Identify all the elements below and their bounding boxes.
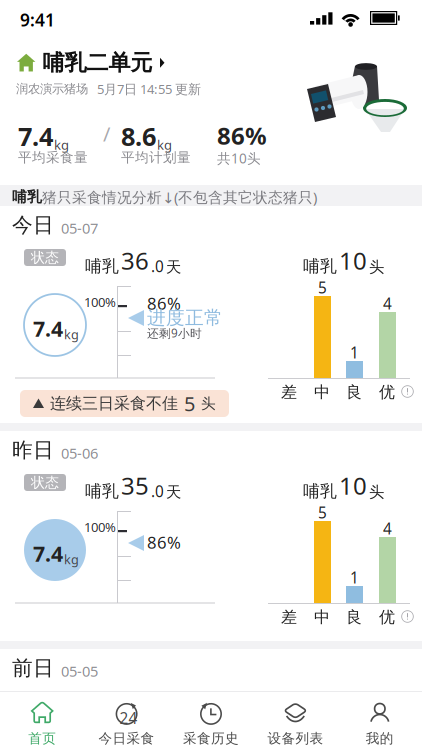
staticText: 状态 (31, 474, 59, 491)
staticText: 前日 (12, 655, 54, 681)
staticText: 头 (201, 394, 216, 413)
staticText: .0 (151, 481, 164, 502)
staticText: 头 (369, 482, 384, 502)
staticText: 8.6 (121, 119, 156, 153)
staticText: 平均采食量 (18, 149, 88, 166)
staticText: kg (157, 136, 172, 153)
staticText: kg (64, 551, 79, 568)
staticText: kg (64, 326, 79, 343)
staticText: 05-07 (61, 218, 98, 238)
button[interactable]: 24 (84, 699, 169, 749)
staticText: 设备列表 (267, 730, 323, 747)
staticText: 采食历史 (183, 730, 239, 747)
staticText: 10 (339, 244, 367, 277)
staticText: 今日 (12, 212, 54, 238)
staticText: 5 (184, 390, 195, 417)
staticText: 良 (346, 382, 362, 402)
staticText: 35 (121, 469, 149, 502)
staticText: 24 (119, 707, 137, 728)
staticText: 哺乳 (12, 188, 42, 206)
staticText: 哺乳 (85, 481, 119, 502)
staticText: 86% (147, 292, 181, 315)
button[interactable]: 我的 (338, 699, 422, 749)
staticText: 05-05 (61, 661, 98, 681)
staticText: 86% (147, 531, 181, 554)
button[interactable]: 说明 (401, 385, 414, 398)
staticText: 7.4 (33, 539, 63, 568)
staticText: / (103, 120, 110, 147)
staticText: 4 (383, 293, 392, 314)
staticText: 哺乳二单元 (42, 49, 152, 76)
staticText: 进度正常 (147, 306, 223, 329)
staticText: 100% (84, 518, 116, 536)
button[interactable]: 设备列表 (253, 699, 338, 749)
button[interactable]: 首页 (0, 699, 84, 749)
staticText: 5 (318, 277, 327, 298)
staticText: 头 (369, 257, 384, 277)
staticText: 100% (84, 293, 116, 311)
staticText: 平均计划量 (121, 149, 191, 166)
staticText: 猪只采食情况分析↓(不包含其它状态猪只) (42, 187, 317, 207)
staticText: 润农演示猪场 (16, 81, 88, 97)
staticText: 9:41 (20, 8, 55, 32)
staticText: 状态 (31, 249, 59, 266)
staticText: 首页 (28, 730, 56, 747)
staticText: 天 (166, 257, 181, 277)
staticText: 优 (379, 382, 395, 402)
staticText: 4 (383, 518, 392, 539)
staticText: 优 (379, 607, 395, 627)
staticText: 中 (314, 382, 330, 402)
staticText: 还剩9小时 (147, 325, 202, 341)
staticText: 今日采食 (99, 730, 155, 747)
staticText: 哺乳 (85, 256, 119, 277)
staticText: 中 (314, 607, 330, 627)
staticText: 连续三日采食不佳 (50, 393, 178, 414)
staticText: 86% (217, 119, 267, 152)
staticText: 5月7日 14:55 更新 (97, 80, 201, 98)
staticText: 1 (350, 567, 359, 588)
button[interactable]: 说明 (401, 610, 414, 623)
button[interactable]: 采食历史 (169, 699, 253, 749)
staticText: 05-06 (61, 443, 98, 463)
staticText: 36 (121, 244, 149, 277)
staticText: 7.4 (18, 119, 53, 153)
staticText: 差 (281, 607, 297, 627)
staticText: 7.4 (33, 314, 63, 343)
staticText: 共10头 (217, 149, 261, 167)
staticText: 良 (346, 607, 362, 627)
button[interactable]: 哺乳二单元 (17, 49, 165, 76)
staticText: 天 (166, 482, 181, 502)
staticText: 5 (318, 502, 327, 523)
staticText: 10 (339, 469, 367, 502)
staticText: 昨日 (12, 437, 54, 463)
staticText: 1 (350, 342, 359, 363)
button[interactable]: 连续三日采食不佳 (20, 390, 229, 417)
staticText: 我的 (366, 730, 394, 747)
staticText: 哺乳 (303, 256, 337, 277)
staticText: kg (54, 136, 69, 153)
staticText: .0 (151, 256, 164, 277)
staticText: 哺乳 (303, 481, 337, 502)
staticText: 差 (281, 382, 297, 402)
